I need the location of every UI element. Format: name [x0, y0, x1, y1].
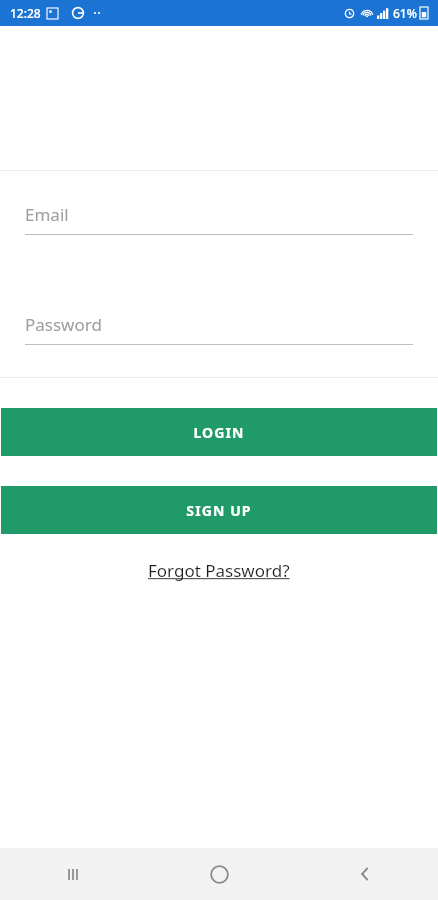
staticText: 61% [393, 5, 417, 21]
staticText: SIGN UP [186, 501, 252, 520]
button[interactable]: Back [292, 848, 438, 900]
staticText: Password [25, 313, 102, 336]
staticText: Email [25, 203, 69, 226]
button[interactable]: Forgot Password? [136, 555, 302, 586]
button[interactable]: LOGIN [1, 408, 437, 456]
button[interactable]: Recent apps [0, 848, 146, 900]
staticText: LOGIN [193, 423, 245, 442]
button[interactable]: Home [146, 848, 292, 900]
staticText: 12:28 [10, 5, 41, 21]
staticText: Forgot Password? [148, 559, 290, 582]
button[interactable]: Email [0, 203, 438, 235]
button[interactable]: SIGN UP [1, 486, 437, 534]
button[interactable]: Password [0, 313, 438, 345]
